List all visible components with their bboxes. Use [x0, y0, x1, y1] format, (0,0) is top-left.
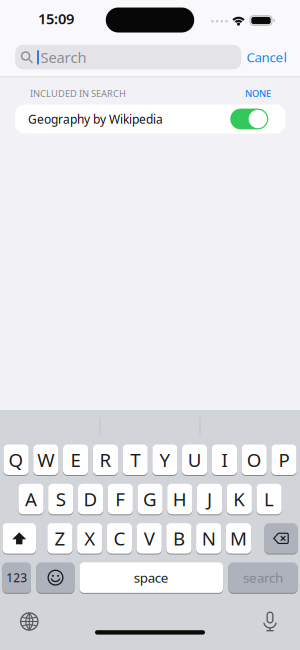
staticText: Z [54, 526, 65, 551]
staticText: Geography by Wikipedia [28, 111, 163, 127]
button[interactable]: search [228, 562, 297, 594]
staticText: D [83, 487, 97, 511]
button[interactable]: S [48, 484, 73, 515]
staticText: N [202, 526, 216, 551]
button[interactable]: U [182, 444, 207, 476]
staticText: K [233, 487, 245, 511]
button[interactable]: M [226, 523, 251, 555]
staticText: T [130, 447, 140, 472]
button[interactable]: Geography by Wikipedia [15, 104, 285, 133]
staticText: V [144, 526, 155, 551]
staticText: X [84, 526, 95, 551]
staticText: NONE [245, 87, 271, 99]
staticText: M [230, 526, 247, 551]
staticText: Cancel [246, 48, 286, 66]
staticText: 15:09 [38, 9, 74, 28]
button[interactable]: 123 [2, 562, 31, 594]
button[interactable]: B [166, 523, 191, 555]
button[interactable]: Delete [264, 523, 297, 555]
button[interactable]: R [93, 444, 118, 476]
button[interactable]: L [256, 484, 282, 515]
staticText: E [71, 447, 81, 472]
staticText: J [207, 487, 212, 511]
staticText: search [243, 569, 283, 586]
staticText: G [143, 487, 157, 511]
button[interactable]: X [77, 523, 102, 555]
button[interactable]: Z [47, 523, 72, 555]
button[interactable]: D [78, 484, 103, 515]
staticText: Q [9, 447, 24, 472]
button[interactable]: Shift [2, 523, 36, 555]
staticText: I [221, 447, 227, 472]
staticText: INCLUDED IN SEARCH [30, 87, 126, 99]
button[interactable]: A [18, 484, 44, 515]
staticText: space [134, 569, 169, 586]
staticText: Y [159, 447, 170, 472]
button[interactable]: NONE [0, 0, 300, 650]
staticText: P [278, 447, 289, 472]
button[interactable]: P [271, 444, 296, 476]
staticText: U [188, 447, 202, 472]
button[interactable]: F [108, 484, 133, 515]
button[interactable]: E [63, 444, 88, 476]
button[interactable]: Cancel [0, 0, 300, 650]
staticText: S [56, 487, 66, 511]
button[interactable]: W [33, 444, 58, 476]
button[interactable]: space [79, 562, 223, 594]
button[interactable]: I [212, 444, 237, 476]
button[interactable]: J [197, 484, 222, 515]
button[interactable]: G [137, 484, 163, 515]
button[interactable]: Next keyboard [20, 612, 39, 631]
button[interactable]: H [167, 484, 192, 515]
staticText: O [247, 447, 262, 472]
staticText: B [173, 526, 185, 551]
staticText: F [115, 487, 125, 511]
button[interactable]: Emoji [36, 562, 74, 594]
button[interactable]: Q [3, 444, 29, 476]
button[interactable]: T [122, 444, 148, 476]
button[interactable]: O [242, 444, 267, 476]
staticText: W [37, 447, 54, 472]
button[interactable]: Dictation [262, 611, 278, 631]
staticText: A [25, 487, 37, 511]
staticText: L [264, 487, 274, 511]
staticText: Search [40, 47, 86, 67]
button[interactable]: N [196, 523, 221, 555]
button[interactable]: V [137, 523, 162, 555]
staticText: H [173, 487, 187, 511]
staticText: R [99, 447, 111, 472]
button[interactable]: K [227, 484, 252, 515]
button[interactable]: C [107, 523, 132, 555]
staticText: C [113, 526, 125, 551]
button[interactable]: Y [152, 444, 177, 476]
staticText: 123 [6, 570, 27, 586]
